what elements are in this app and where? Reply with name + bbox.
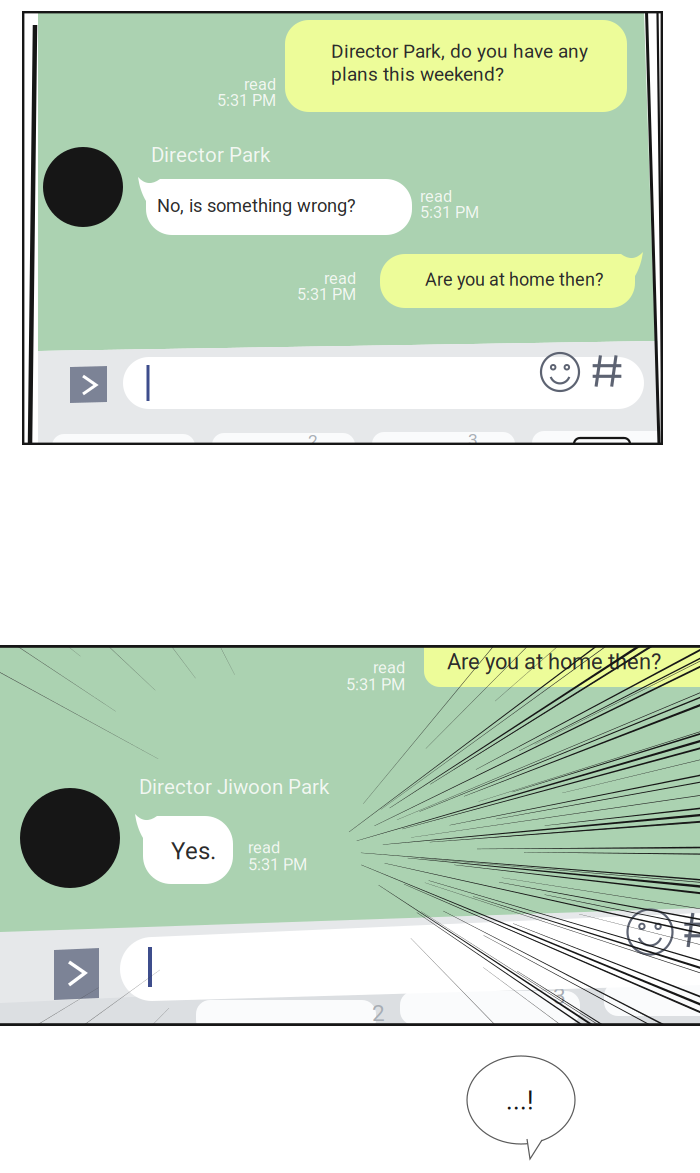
staticText: Yes. — [171, 837, 216, 865]
staticText: 5:31 PM — [248, 855, 307, 874]
staticText: 5:31 PM — [346, 675, 405, 694]
staticText: Director Jiwoon Park — [139, 775, 329, 799]
staticText: No, is something wrong? — [157, 195, 356, 216]
staticText: Director Park, do you have any — [331, 40, 588, 62]
staticText: Are you at home then? — [425, 269, 604, 290]
staticText: ...! — [506, 1086, 534, 1116]
staticText: 3 — [468, 430, 478, 450]
staticText: 5:31 PM — [217, 91, 276, 110]
staticText: 2 — [372, 1000, 385, 1027]
staticText: Are you at home then? — [447, 649, 661, 675]
staticText: read — [324, 269, 356, 288]
staticText: read — [248, 838, 280, 857]
staticText: read — [420, 187, 452, 206]
staticText: 5:31 PM — [420, 203, 479, 222]
staticText: 2 — [308, 431, 318, 451]
staticText: read — [244, 75, 276, 94]
staticText: 3 — [553, 983, 566, 1010]
staticText: read — [373, 658, 405, 677]
staticText: 5:31 PM — [297, 285, 356, 304]
staticText: Director Park — [151, 143, 270, 167]
staticText: plans this weekend? — [331, 63, 504, 85]
